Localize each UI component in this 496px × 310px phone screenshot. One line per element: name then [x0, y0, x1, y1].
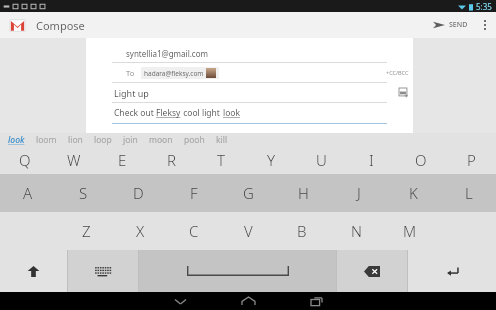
button[interactable]: Home — [225, 292, 271, 310]
staticText: look — [223, 107, 241, 119]
button[interactable]: Enter — [408, 250, 496, 292]
staticText: kill — [216, 134, 228, 146]
staticText: M — [403, 221, 417, 241]
staticText: Q — [19, 150, 31, 170]
button[interactable]: G — [221, 174, 276, 212]
staticText: S — [79, 183, 88, 203]
button[interactable]: S — [56, 174, 111, 212]
button[interactable]: moon — [149, 134, 173, 146]
staticText: N — [351, 221, 362, 241]
staticText: O — [415, 150, 427, 170]
button[interactable]: Recent apps — [293, 292, 339, 310]
button[interactable]: C — [167, 212, 221, 250]
button[interactable]: U — [296, 146, 346, 174]
button[interactable]: kill — [216, 134, 228, 146]
staticText: L — [465, 183, 473, 203]
button[interactable]: H — [276, 174, 331, 212]
button[interactable]: L — [441, 174, 496, 212]
button[interactable]: Y — [246, 146, 296, 174]
staticText: cool light — [181, 107, 223, 119]
button[interactable]: A — [0, 174, 56, 212]
button[interactable]: K — [386, 174, 441, 212]
button[interactable]: join — [123, 134, 138, 146]
staticText: pooh — [184, 134, 205, 146]
button[interactable]: J — [331, 174, 386, 212]
staticText: Light up — [114, 87, 149, 99]
button[interactable]: Q — [0, 146, 49, 174]
staticText: loop — [94, 134, 112, 146]
staticText: loom — [36, 134, 57, 146]
button[interactable]: F — [166, 174, 221, 212]
button[interactable]: E — [98, 146, 147, 174]
staticText: W — [67, 150, 81, 170]
button[interactable]: lion — [68, 134, 83, 146]
staticText: F — [190, 183, 198, 203]
button[interactable]: W — [49, 146, 98, 174]
button[interactable]: T — [196, 146, 246, 174]
staticText: P — [467, 150, 476, 170]
button[interactable]: Back — [157, 292, 203, 310]
staticText: J — [357, 183, 361, 203]
staticText: 5:35 — [476, 1, 492, 12]
button[interactable]: Switch keyboard — [68, 250, 138, 292]
button[interactable]: Backspace — [337, 250, 407, 292]
staticText: V — [244, 221, 253, 241]
staticText: U — [316, 150, 327, 170]
staticText: To — [126, 68, 135, 78]
button[interactable]: Attach image — [395, 84, 413, 102]
staticText: A — [23, 183, 33, 203]
button[interactable]: P — [446, 146, 496, 174]
button[interactable]: look — [8, 134, 25, 146]
button[interactable]: Gmail — [6, 14, 28, 36]
button[interactable]: +CC/BCC — [386, 69, 413, 76]
staticText: Z — [82, 221, 91, 241]
staticText: hadara@fleksy.com — [144, 69, 204, 78]
button[interactable]: Shift — [0, 250, 67, 292]
button[interactable]: M — [383, 212, 437, 250]
staticText: X — [136, 221, 145, 241]
staticText: join — [123, 134, 138, 146]
staticText: D — [133, 183, 144, 203]
button[interactable]: I — [346, 146, 396, 174]
button[interactable]: loom — [36, 134, 57, 146]
staticText: Check out — [114, 107, 156, 119]
button[interactable]: D — [111, 174, 166, 212]
staticText: G — [243, 183, 254, 203]
button[interactable]: To — [86, 63, 413, 82]
button[interactable]: B — [275, 212, 329, 250]
button[interactable]: Space — [139, 250, 336, 292]
staticText: look — [8, 134, 25, 146]
staticText: C — [189, 221, 199, 241]
button[interactable]: pooh — [184, 134, 205, 146]
staticText: lion — [68, 134, 83, 146]
button[interactable]: syntellia1@gmail.com — [86, 44, 413, 62]
staticText: T — [217, 150, 225, 170]
button[interactable]: O — [396, 146, 446, 174]
staticText: Fleksy — [156, 107, 181, 119]
staticText: syntellia1@gmail.com — [126, 48, 209, 59]
staticText: E — [118, 150, 127, 170]
button[interactable]: X — [113, 212, 167, 250]
button[interactable]: SEND — [427, 12, 474, 38]
staticText: H — [298, 183, 309, 203]
button[interactable]: loop — [94, 134, 112, 146]
staticText: moon — [149, 134, 173, 146]
button[interactable]: V — [221, 212, 275, 250]
staticText: R — [167, 150, 176, 170]
staticText: K — [409, 183, 418, 203]
staticText: Y — [267, 150, 276, 170]
button[interactable]: R — [147, 146, 196, 174]
staticText: I — [369, 150, 374, 170]
button[interactable]: Check out — [86, 103, 413, 123]
button[interactable]: Z — [59, 212, 113, 250]
staticText: B — [297, 221, 307, 241]
button[interactable]: More options — [474, 12, 496, 38]
staticText: SEND — [449, 20, 468, 30]
staticText: Compose — [36, 18, 85, 33]
button[interactable]: N — [329, 212, 383, 250]
